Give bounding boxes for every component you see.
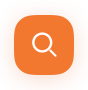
button[interactable]: Search: [14, 15, 74, 75]
